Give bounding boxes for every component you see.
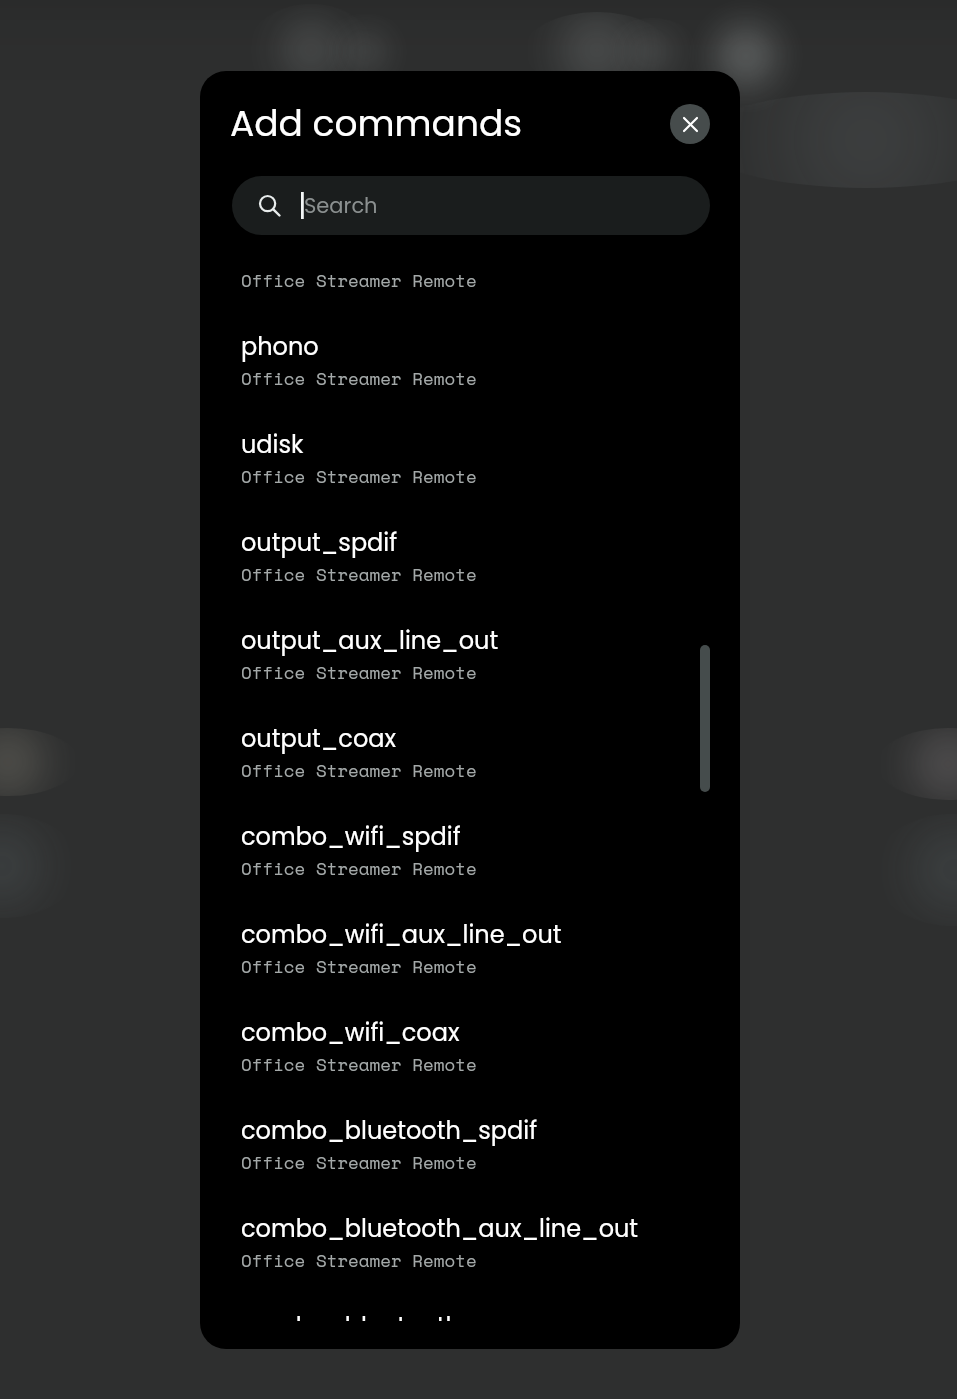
button[interactable]: udisk	[241, 413, 740, 511]
button[interactable]: output_coax	[241, 707, 740, 805]
staticText: combo_wifi_spdif	[241, 820, 461, 854]
staticText: udisk	[241, 428, 304, 462]
staticText: Office Streamer Remote	[241, 463, 477, 489]
staticText: combo_wifi_aux_line_out	[241, 918, 562, 952]
staticText: combo_bluetooth_aux_line_out	[241, 1212, 639, 1246]
staticText: phono	[241, 330, 319, 364]
staticText: Search	[304, 191, 378, 220]
staticText: output_aux_line_out	[241, 624, 499, 658]
staticText: Office Streamer Remote	[241, 365, 477, 391]
button[interactable]: combo_wifi_aux_line_out	[241, 903, 740, 1001]
button[interactable]: combo_bluetooth_spdif	[241, 1099, 740, 1197]
staticText: Add commands	[230, 98, 523, 148]
staticText: Office Streamer Remote	[241, 855, 477, 881]
staticText: Office Streamer Remote	[241, 1149, 477, 1175]
staticText: combo_bluetooth_spdif	[241, 1114, 538, 1148]
button[interactable]: combo_bluetooth_coax	[241, 1295, 740, 1321]
staticText: Office Streamer Remote	[241, 1051, 477, 1077]
staticText: output_spdif	[241, 526, 398, 560]
button[interactable]: combo_bluetooth_aux_line_out	[241, 1197, 740, 1295]
button[interactable]: line_in	[241, 262, 740, 315]
staticText: Office Streamer Remote	[241, 953, 477, 979]
button[interactable]: output_spdif	[241, 511, 740, 609]
button[interactable]: Close	[670, 104, 710, 144]
button[interactable]: phono	[241, 315, 740, 413]
staticText: Office Streamer Remote	[241, 561, 477, 587]
staticText: output_coax	[241, 722, 397, 756]
button[interactable]: Search commands	[232, 176, 710, 235]
staticText: Office Streamer Remote	[241, 659, 477, 685]
staticText: Office Streamer Remote	[241, 1247, 477, 1273]
staticText: combo_bluetooth_coax	[241, 1310, 536, 1321]
button[interactable]: output_aux_line_out	[241, 609, 740, 707]
staticText: combo_wifi_coax	[241, 1016, 460, 1050]
staticText: Office Streamer Remote	[241, 757, 477, 783]
button[interactable]: combo_wifi_coax	[241, 1001, 740, 1099]
button[interactable]: combo_wifi_spdif	[241, 805, 740, 903]
staticText: Office Streamer Remote	[241, 267, 477, 293]
